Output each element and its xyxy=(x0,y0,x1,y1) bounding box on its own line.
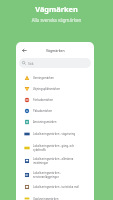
staticText: Väjningspliktsmärken xyxy=(33,87,61,91)
staticText: Sök xyxy=(28,61,34,65)
staticText: Anvisningsmärken xyxy=(33,120,57,124)
button[interactable]: Varningsmärken xyxy=(16,75,94,86)
staticText: Upplysningsmärken xyxy=(33,197,59,200)
button[interactable]: Förbudsmärken xyxy=(16,97,94,108)
staticText: Vägmärken xyxy=(0,4,113,14)
staticText: Lokaliseringsmärken - allmänna inrättnin… xyxy=(33,157,84,165)
staticText: Varningsmärken xyxy=(33,76,54,80)
staticText: Förbudsmärken xyxy=(33,98,54,102)
button[interactable]: Lokaliseringsmärken - allmänna inrättnin… xyxy=(16,157,94,171)
button[interactable]: Back xyxy=(19,45,29,55)
button[interactable]: Lokaliseringsmärken - serviceanläggninga… xyxy=(16,171,94,184)
staticText: Lokaliseringsmärken - gång- och cykeltra… xyxy=(33,144,84,152)
button[interactable]: Påbudsmärken xyxy=(16,108,94,119)
button[interactable]: Lokaliseringsmärken - turistiska mål xyxy=(16,184,94,197)
button[interactable]: Lokaliseringsmärken - gång- och cykeltra… xyxy=(16,144,94,157)
staticText: Alla svenska vägmärken xyxy=(0,17,113,23)
staticText: Lokaliseringsmärken - vägvisning xyxy=(33,132,76,136)
button[interactable]: Upplysningsmärken xyxy=(16,197,94,200)
staticText: Vägmärken xyxy=(46,48,65,53)
button[interactable]: Sök xyxy=(19,58,91,68)
button[interactable]: Anvisningsmärken xyxy=(16,119,94,131)
button[interactable]: Lokaliseringsmärken - vägvisning xyxy=(16,131,94,144)
staticText: Lokaliseringsmärken - serviceanläggninga… xyxy=(33,171,84,179)
staticText: Lokaliseringsmärken - turistiska mål xyxy=(33,185,79,189)
button[interactable]: Väjningspliktsmärken xyxy=(16,86,94,97)
staticText: Påbudsmärken xyxy=(33,109,53,113)
